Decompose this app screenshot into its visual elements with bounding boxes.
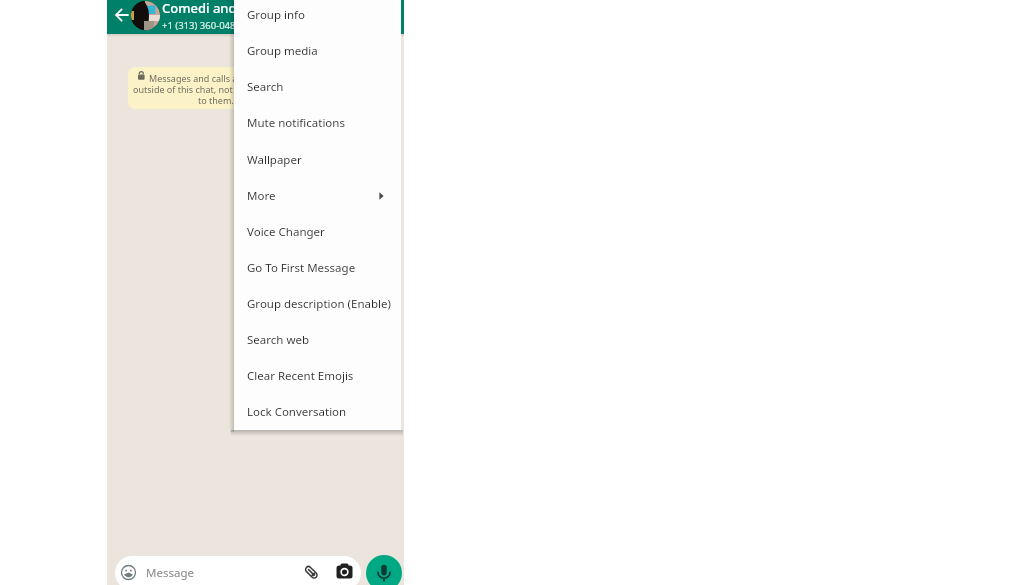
- staticText: Group info: [247, 7, 306, 23]
- staticText: Search: [247, 79, 284, 95]
- button[interactable]: Search web: [234, 322, 401, 358]
- button[interactable]: Group info: [234, 0, 401, 33]
- button[interactable]: Voice Changer: [234, 214, 401, 250]
- staticText: Voice Changer: [247, 224, 325, 240]
- staticText: +1 (313) 360-0485: [162, 19, 241, 32]
- staticText: Group media: [247, 43, 318, 59]
- button[interactable]: Go To First Message: [234, 250, 401, 286]
- staticText: to them. Tap to learn more.: [198, 94, 314, 106]
- staticText: Comedi and Friends: [162, 0, 286, 17]
- button[interactable]: [131, 1, 160, 30]
- button[interactable]: Search: [234, 69, 401, 105]
- button[interactable]: Lock Conversation: [234, 394, 401, 430]
- button[interactable]: Group media: [234, 33, 401, 69]
- staticText: outside of this chat, not even WhatsApp,…: [133, 83, 379, 95]
- button[interactable]: Mute notifications: [234, 105, 401, 141]
- button[interactable]: [336, 563, 353, 580]
- staticText: Clear Recent Emojis: [247, 368, 354, 384]
- button[interactable]: [303, 564, 320, 581]
- staticText: More: [247, 188, 276, 204]
- staticText: Wallpaper: [247, 152, 302, 168]
- button[interactable]: [121, 565, 136, 580]
- staticText: Search web: [247, 332, 309, 348]
- staticText: Go To First Message: [247, 260, 356, 276]
- button[interactable]: Group description (Enable): [234, 286, 401, 322]
- button[interactable]: [110, 1, 134, 29]
- staticText: Lock Conversation: [247, 404, 347, 420]
- button[interactable]: Clear Recent Emojis: [234, 358, 401, 394]
- button[interactable]: Message: [115, 556, 361, 585]
- staticText: Messages and calls are end-to-end encryp…: [149, 72, 376, 84]
- button[interactable]: [366, 555, 402, 585]
- staticText: Mute notifications: [247, 115, 345, 131]
- staticText: Message: [146, 565, 194, 581]
- staticText: Group description (Enable): [247, 296, 391, 312]
- button[interactable]: More: [234, 178, 401, 214]
- button[interactable]: Wallpaper: [234, 142, 401, 178]
